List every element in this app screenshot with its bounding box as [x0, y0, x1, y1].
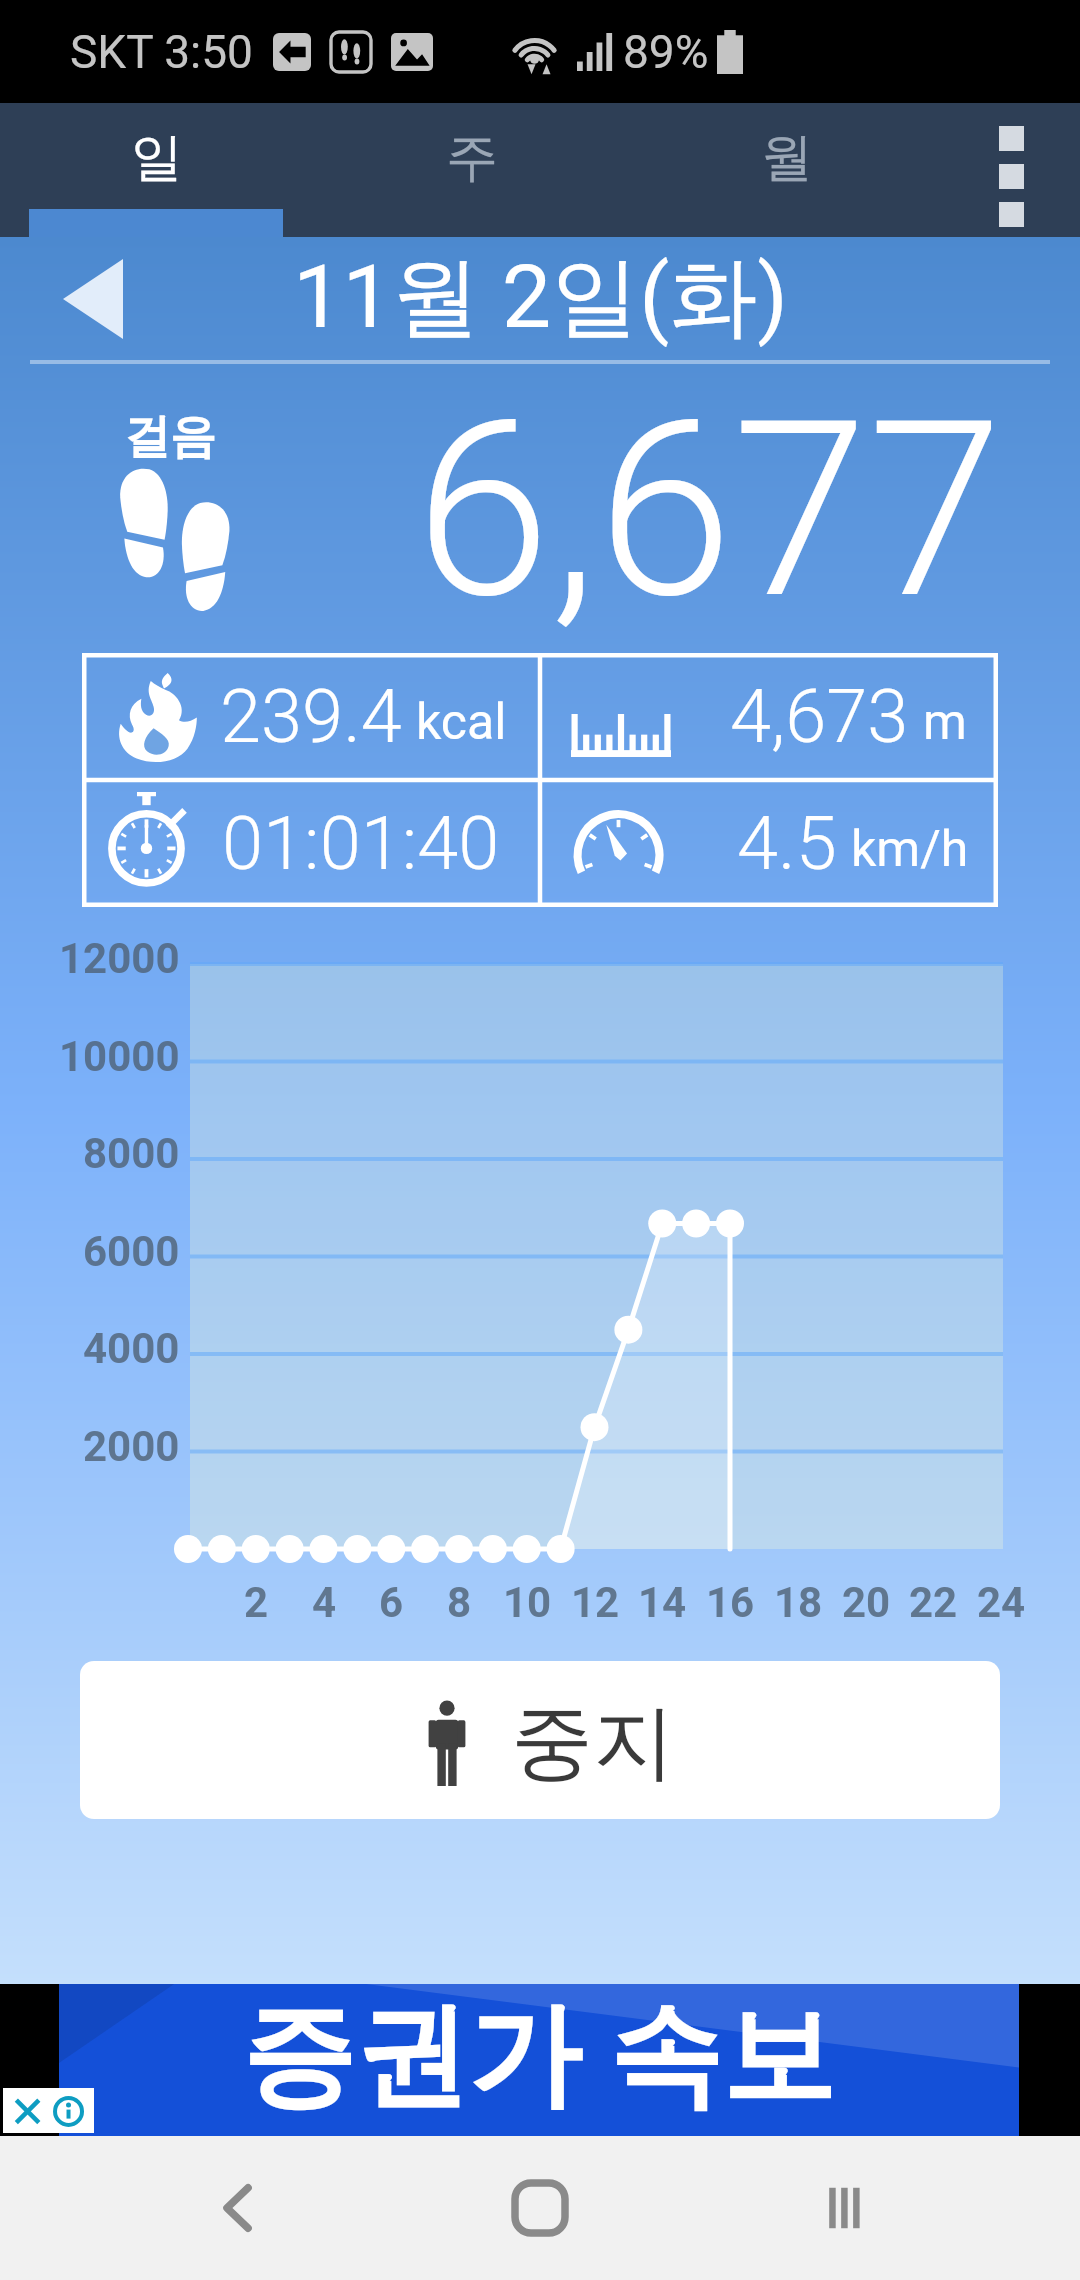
staticText: 6 — [379, 1578, 404, 1627]
staticText: 4.5 — [737, 800, 837, 887]
staticText: 10 — [503, 1578, 552, 1627]
button[interactable]: Previous day — [38, 237, 148, 361]
staticText: 월 — [761, 125, 813, 191]
button[interactable]: More options — [940, 103, 1080, 213]
staticText: 8000 — [83, 1129, 180, 1178]
staticText: 10000 — [59, 1032, 180, 1081]
staticText: 18 — [774, 1578, 823, 1627]
button[interactable]: Back — [173, 2143, 303, 2273]
staticText: 01:01:40 — [222, 800, 500, 887]
staticText: kcal — [416, 693, 507, 752]
staticText: 6000 — [83, 1227, 180, 1276]
staticText: 22 — [909, 1578, 958, 1627]
staticText: 4,673 — [730, 673, 909, 760]
button[interactable]: Close ad — [3, 2088, 94, 2133]
button[interactable]: 중지 — [80, 1661, 1000, 1819]
staticText: 16 — [706, 1578, 755, 1627]
staticText: 6,677 — [415, 368, 1004, 628]
staticText: m — [923, 693, 967, 752]
button[interactable]: Home — [475, 2143, 605, 2273]
button[interactable]: 일 — [30, 103, 283, 213]
staticText: 12000 — [59, 934, 180, 983]
staticText: 8 — [447, 1578, 472, 1627]
staticText: km/h — [851, 820, 969, 879]
staticText: 일 — [131, 125, 183, 191]
staticText: 중지 — [511, 1691, 675, 1794]
button[interactable]: 주 — [345, 103, 598, 213]
staticText: 14 — [638, 1578, 687, 1627]
staticText: 239.4 — [220, 673, 402, 760]
staticText: 20 — [842, 1578, 891, 1627]
staticText: 걸음 — [124, 408, 216, 466]
button[interactable]: 월 — [660, 103, 913, 213]
staticText: 24 — [977, 1578, 1026, 1627]
button[interactable]: 증권가 속보 — [59, 1984, 1019, 2136]
staticText: 11월 2일(화) — [293, 242, 788, 353]
staticText: 12 — [571, 1578, 620, 1627]
staticText: 89% — [623, 25, 709, 79]
staticText: 증권가 속보 — [242, 1985, 836, 2127]
staticText: 2000 — [83, 1422, 180, 1471]
staticText: 4 — [312, 1578, 337, 1627]
staticText: 4000 — [83, 1324, 180, 1373]
staticText: 주 — [446, 125, 498, 191]
button[interactable]: Recent apps — [778, 2143, 908, 2273]
staticText: SKT 3:50 — [70, 25, 253, 79]
staticText: 2 — [244, 1578, 269, 1627]
